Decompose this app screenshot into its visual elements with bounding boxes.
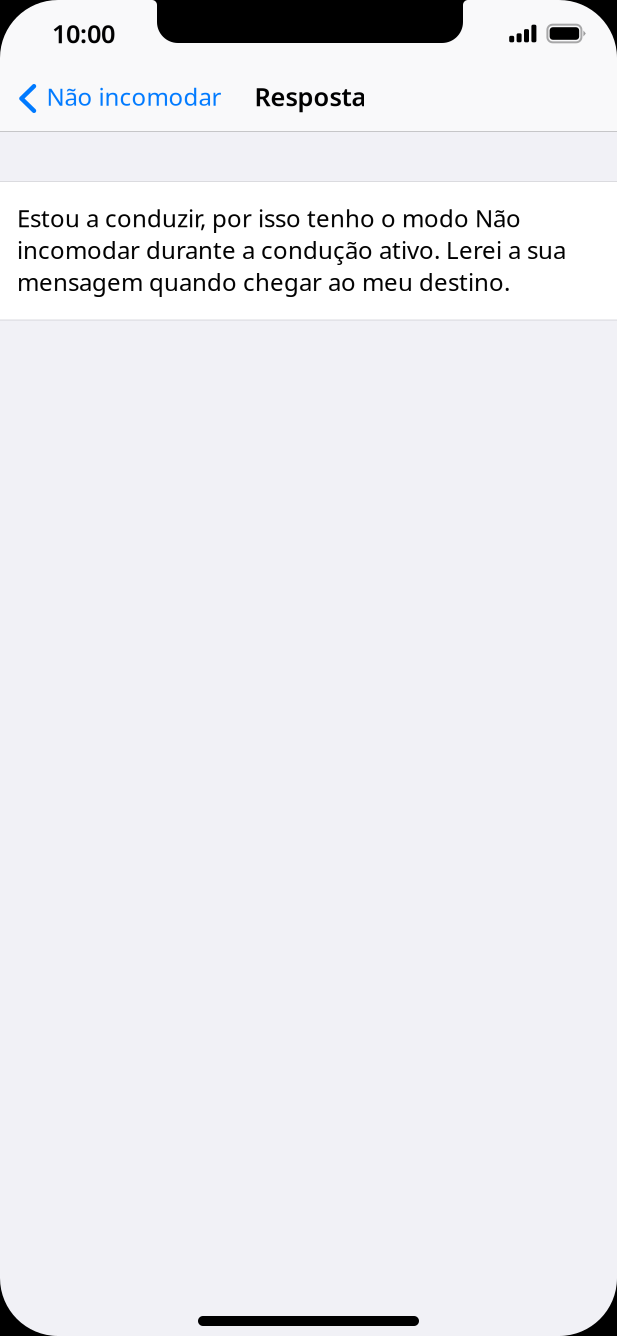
button[interactable]: Estou a conduzir, por isso tenho o modo … (0, 182, 617, 320)
staticText: 10:00 (52, 17, 115, 50)
staticText: Estou a conduzir, por isso tenho o modo … (17, 202, 566, 298)
staticText: Não incomodar (46, 81, 221, 112)
staticText: Resposta (254, 80, 366, 113)
button[interactable]: Não incomodar (0, 62, 254, 131)
